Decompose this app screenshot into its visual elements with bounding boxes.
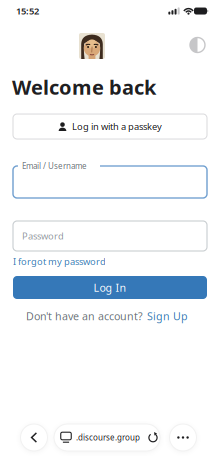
staticText: Password <box>22 230 64 242</box>
button[interactable] <box>187 35 207 55</box>
staticText: Log in with a passkey <box>72 120 162 133</box>
staticText: Sign Up <box>147 309 188 323</box>
staticText: 15:52 <box>16 5 39 17</box>
staticText: Don't have an account? <box>26 309 143 323</box>
staticText: Log In <box>93 280 126 295</box>
button[interactable]: Email / Username <box>13 163 207 201</box>
staticText: Email / Username <box>22 161 87 171</box>
button[interactable]: Sign Up <box>147 309 188 323</box>
button[interactable]: Password <box>13 221 207 251</box>
button[interactable]: Log In <box>13 276 207 299</box>
button[interactable] <box>20 424 47 451</box>
staticText: .discourse.group <box>76 432 140 443</box>
staticText: I forgot my password <box>13 255 106 268</box>
button[interactable]: I forgot my password <box>13 255 207 268</box>
button[interactable]: Log in with a passkey <box>13 114 207 139</box>
button[interactable] <box>147 432 158 443</box>
staticText: Welcome back <box>12 74 156 100</box>
button[interactable] <box>169 424 196 451</box>
button[interactable]: .discourse.group <box>54 424 160 451</box>
